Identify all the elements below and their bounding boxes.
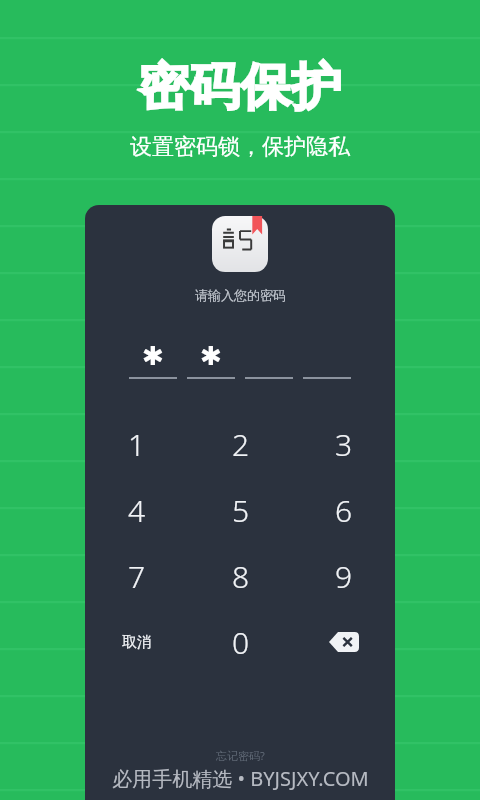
button[interactable]: 6 [292, 477, 395, 543]
staticText: 请输入您的密码 [195, 287, 286, 303]
staticText: 4 [128, 490, 146, 531]
button[interactable]: 5 [189, 477, 292, 543]
staticText: 9 [335, 556, 353, 597]
staticText: ✱ [200, 341, 222, 371]
button[interactable]: 2 [189, 411, 292, 477]
button[interactable]: 4 [85, 477, 189, 543]
staticText: ✱ [142, 341, 164, 371]
staticText: 密码保护 [138, 56, 342, 119]
staticText: 设置密码锁，保护隐私 [130, 133, 350, 161]
staticText: 6 [335, 490, 353, 531]
button[interactable]: 0 [189, 609, 292, 675]
button[interactable]: 7 [85, 543, 189, 609]
staticText: 7 [128, 556, 146, 597]
button[interactable]: 3 [292, 411, 395, 477]
staticText: 1 [128, 424, 146, 465]
button[interactable]: 忘记密码? [216, 748, 265, 763]
button[interactable]: 8 [189, 543, 292, 609]
staticText: 0 [232, 622, 250, 663]
staticText: 必用手机精选 • BYJSJXY.COM [112, 765, 369, 792]
staticText: 取消 [122, 633, 152, 652]
staticText: 5 [232, 490, 250, 531]
button[interactable]: Backspace [292, 609, 395, 675]
staticText: 3 [335, 424, 353, 465]
button[interactable]: 1 [85, 411, 189, 477]
button[interactable]: 9 [292, 543, 395, 609]
staticText: 8 [232, 556, 250, 597]
button[interactable]: 取消 [85, 609, 189, 675]
staticText: 2 [232, 424, 250, 465]
